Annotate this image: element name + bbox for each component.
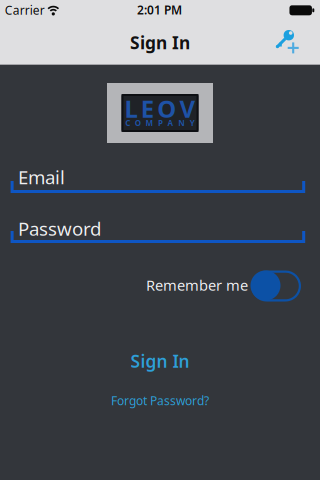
- button[interactable]: [248, 268, 304, 304]
- staticText: O: [157, 92, 176, 124]
- staticText: E: [141, 92, 154, 124]
- button[interactable]: Email: [10, 162, 307, 194]
- staticText: A: [168, 117, 174, 128]
- staticText: Remember me: [146, 275, 248, 295]
- staticText: C: [125, 117, 130, 128]
- staticText: Y: [190, 117, 195, 128]
- staticText: Sign In: [130, 349, 189, 372]
- button[interactable]: Sign In: [90, 344, 230, 378]
- staticText: Forgot Password?: [111, 392, 209, 408]
- staticText: L: [124, 92, 137, 124]
- staticText: Email: [18, 165, 65, 189]
- button[interactable]: [269, 20, 313, 64]
- button[interactable]: Forgot Password?: [80, 387, 240, 413]
- staticText: 2:01 PM: [137, 2, 182, 18]
- staticText: Password: [18, 216, 101, 241]
- staticText: O: [135, 117, 141, 128]
- staticText: M: [145, 117, 153, 128]
- staticText: V: [180, 92, 196, 124]
- staticText: P: [158, 117, 163, 128]
- staticText: Carrier: [5, 2, 45, 18]
- button[interactable]: Password: [10, 212, 307, 244]
- staticText: Sign In: [130, 31, 190, 54]
- staticText: N: [178, 117, 185, 128]
